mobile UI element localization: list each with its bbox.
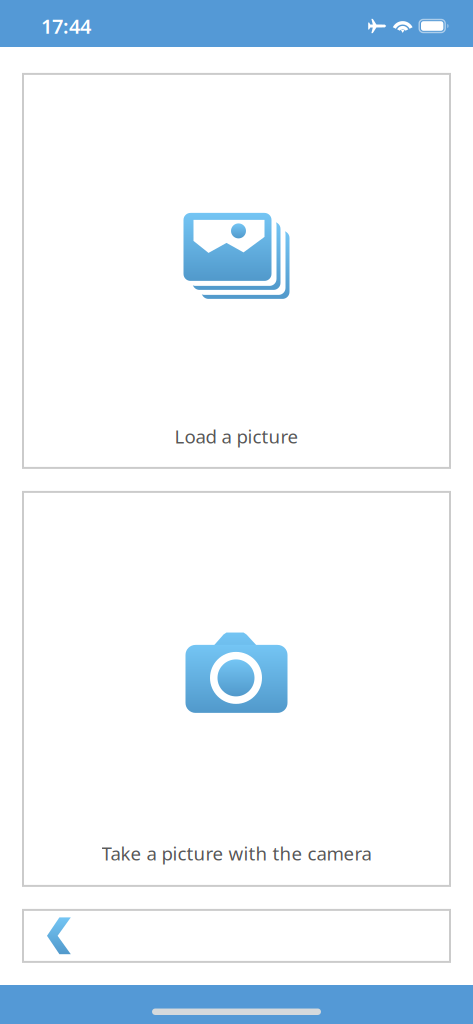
- staticText: Take a picture with the camera: [101, 841, 371, 866]
- button[interactable]: Back: [23, 910, 450, 962]
- staticText: Load a picture: [174, 424, 298, 449]
- staticText: 17:44: [41, 13, 91, 39]
- button[interactable]: Take a picture with the camera: [23, 492, 450, 886]
- button[interactable]: Load a picture: [23, 74, 450, 468]
